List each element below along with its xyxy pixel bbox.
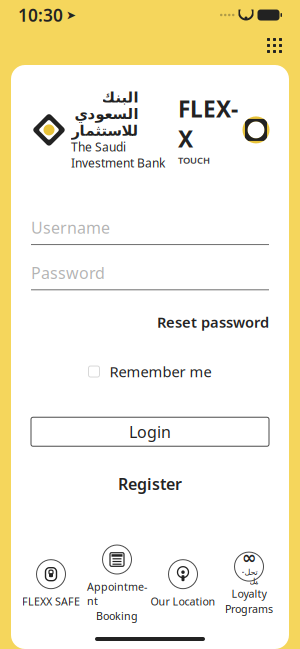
staticText: Login — [129, 421, 171, 442]
staticText: ➤ — [66, 8, 76, 22]
staticText: ∞ — [242, 548, 256, 567]
staticText: FLEXX — [178, 94, 238, 154]
button[interactable]: Our Location — [150, 557, 216, 610]
staticText: TOUCH — [178, 154, 210, 166]
staticText: Reset password — [157, 312, 269, 332]
button[interactable]: Menu — [261, 32, 288, 59]
staticText: Remember me — [109, 362, 211, 381]
button[interactable]: Reset password — [31, 308, 269, 336]
button[interactable]: Appointment — [84, 542, 150, 625]
staticText: Register — [118, 473, 182, 494]
button[interactable]: ∞ — [216, 550, 282, 618]
staticText: Password — [31, 262, 105, 283]
button[interactable]: Remember me — [31, 358, 269, 385]
staticText: Username — [31, 217, 110, 238]
staticText: FLEXX SAFE — [22, 594, 80, 608]
staticText: Appointment — [87, 579, 147, 608]
staticText: The Saudi Investment Bank — [71, 139, 165, 171]
staticText: Programs — [225, 602, 273, 616]
staticText: تحليل — [241, 567, 257, 585]
button[interactable]: Login — [31, 417, 269, 446]
staticText: Loyalty — [231, 587, 266, 601]
staticText: البنك السعودي للاستثمار — [71, 89, 138, 139]
staticText: 10:30 — [18, 3, 63, 26]
button[interactable]: FLEXX SAFE — [18, 557, 84, 610]
staticText: Booking — [96, 609, 138, 623]
staticText: Our Location — [150, 594, 215, 608]
button[interactable]: Register — [31, 468, 269, 499]
